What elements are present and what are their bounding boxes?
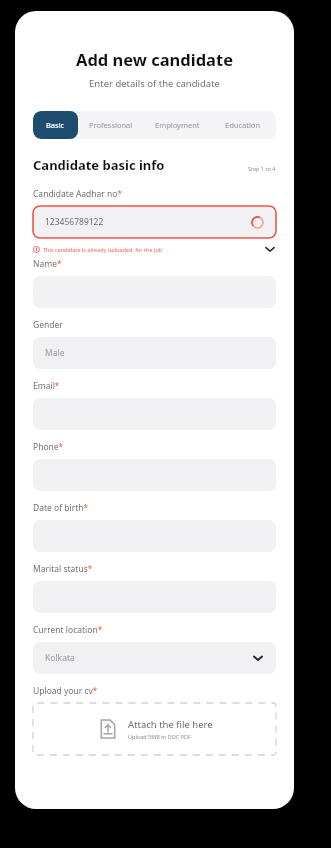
staticText: Upload your cv* bbox=[33, 685, 98, 697]
staticText: This candidate is already uploaded for t… bbox=[43, 246, 163, 253]
button[interactable]: Male bbox=[33, 337, 276, 369]
button[interactable]: Kolkata bbox=[33, 642, 276, 674]
staticText: Gender bbox=[33, 319, 63, 331]
staticText: Upload 5MB in DOC PDF bbox=[128, 733, 191, 740]
staticText: 123456789122 bbox=[45, 216, 251, 228]
button[interactable]: Education bbox=[210, 111, 276, 139]
staticText: Male bbox=[45, 347, 65, 359]
staticText: Phone* bbox=[33, 441, 63, 453]
staticText: Candidate basic info bbox=[33, 156, 165, 174]
button[interactable]: Basic bbox=[33, 111, 78, 139]
staticText: Enter details of the candidate bbox=[33, 77, 276, 90]
staticText: Attach the file here bbox=[128, 718, 213, 731]
staticText: Current location* bbox=[33, 624, 103, 636]
staticText: Basic bbox=[46, 120, 65, 130]
staticText: Candidate Aadhar no* bbox=[33, 188, 122, 200]
button[interactable]: Expand bbox=[264, 243, 276, 255]
staticText: Professional bbox=[89, 120, 133, 130]
staticText: Marital status* bbox=[33, 563, 93, 575]
staticText: Date of birth* bbox=[33, 502, 88, 514]
button[interactable]: Employment bbox=[144, 111, 210, 139]
button[interactable]: 123456789122 bbox=[33, 206, 276, 238]
staticText: Education bbox=[225, 120, 261, 130]
button[interactable]: Attach the file here bbox=[33, 703, 276, 755]
staticText: Email* bbox=[33, 380, 60, 392]
staticText: Name* bbox=[33, 258, 62, 270]
staticText: Step 1 to 4 bbox=[248, 165, 276, 172]
staticText: Add new candidate bbox=[33, 48, 276, 70]
staticText: Kolkata bbox=[45, 652, 75, 664]
button[interactable]: Professional bbox=[78, 111, 144, 139]
staticText: Employment bbox=[155, 120, 200, 130]
